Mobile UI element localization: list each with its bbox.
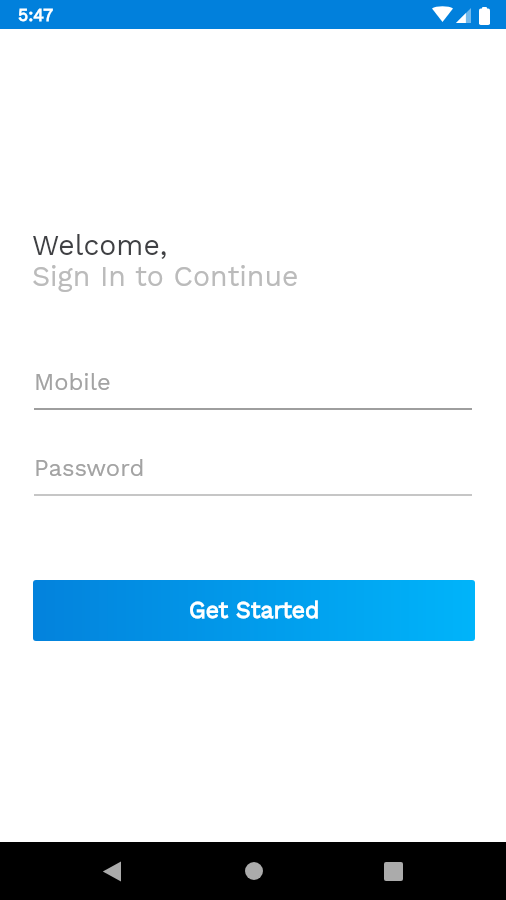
button[interactable]: Password xyxy=(34,448,472,496)
button[interactable]: Back xyxy=(84,842,140,900)
staticText: Welcome, xyxy=(32,229,168,262)
staticText: 5:47 xyxy=(18,5,53,26)
button[interactable]: Mobile xyxy=(34,362,472,410)
staticText: Get Started xyxy=(189,597,320,624)
button[interactable]: Get Started xyxy=(33,580,475,641)
button[interactable]: Recent apps xyxy=(365,842,421,900)
button[interactable]: Home xyxy=(226,842,282,900)
staticText: Sign In to Continue xyxy=(32,260,299,293)
staticText: Mobile xyxy=(34,368,111,396)
staticText: Password xyxy=(34,454,145,482)
